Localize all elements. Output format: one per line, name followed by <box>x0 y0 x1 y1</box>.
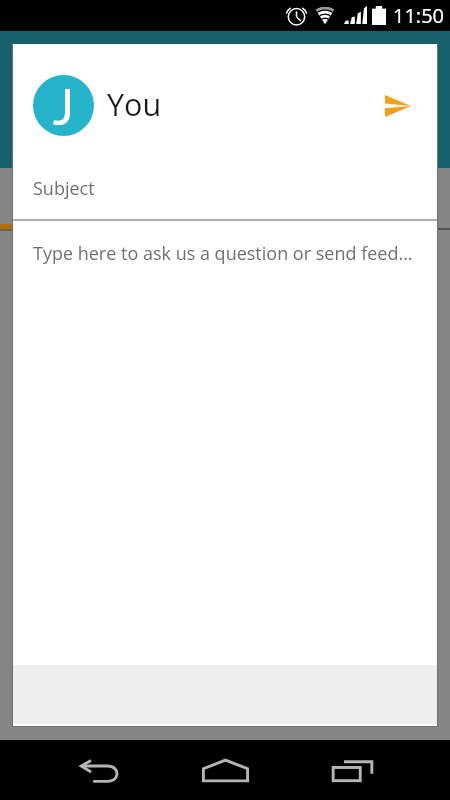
button[interactable]: Recent apps <box>292 740 412 800</box>
staticText: You <box>107 83 162 125</box>
staticText: Subject <box>33 176 95 201</box>
staticText: J <box>53 76 75 136</box>
button[interactable]: Home <box>165 740 285 800</box>
staticText: Type here to ask us a question or send f… <box>33 241 413 266</box>
button[interactable]: Back <box>40 740 160 800</box>
button[interactable]: Send <box>371 77 425 131</box>
button[interactable]: Type here to ask us a question or send f… <box>13 221 437 665</box>
staticText: 11:50 <box>393 2 444 29</box>
button[interactable]: Subject <box>13 163 437 219</box>
